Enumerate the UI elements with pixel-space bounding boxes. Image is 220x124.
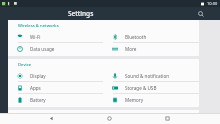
- staticText: Display: [30, 73, 46, 79]
- staticText: More: [125, 46, 137, 52]
- staticText: Battery: [30, 97, 46, 103]
- button[interactable]: Display: [8, 70, 103, 81]
- staticText: Sound & notification: [125, 73, 170, 79]
- button[interactable]: Data usage: [8, 43, 103, 54]
- staticText: Bluetooth: [125, 34, 147, 40]
- button[interactable]: More: [103, 43, 199, 54]
- staticText: Storage & USB: [125, 85, 157, 91]
- staticText: Wi‑Fi: [30, 34, 41, 40]
- button[interactable]: Apps: [8, 82, 103, 93]
- button[interactable]: Sound & notification: [103, 70, 199, 81]
- button[interactable]: Memory: [103, 94, 199, 105]
- button[interactable]: Battery: [8, 94, 103, 105]
- staticText: 10:00: [207, 1, 218, 6]
- button[interactable]: Home: [104, 113, 115, 124]
- button[interactable]: Back: [46, 113, 57, 124]
- button[interactable]: Search: [196, 9, 206, 19]
- staticText: Apps: [30, 85, 41, 91]
- staticText: Data usage: [30, 46, 55, 52]
- staticText: Settings: [68, 9, 94, 18]
- button[interactable]: Wi‑Fi: [8, 31, 103, 42]
- button[interactable]: Bluetooth: [103, 31, 199, 42]
- staticText: Device: [18, 62, 32, 68]
- staticText: Memory: [125, 97, 144, 103]
- button[interactable]: Recent apps: [162, 113, 173, 124]
- staticText: Wireless & networks: [18, 23, 59, 29]
- button[interactable]: Storage & USB: [103, 82, 199, 93]
